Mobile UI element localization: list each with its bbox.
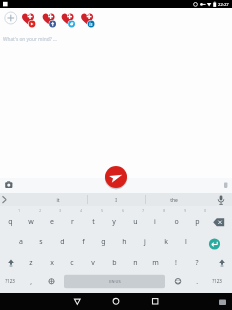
staticText: 0 [204,209,206,213]
staticText: a [19,237,23,247]
staticText: r [71,217,74,227]
staticText: the [170,197,178,204]
staticText: . [196,277,198,286]
button[interactable] [41,11,57,27]
button[interactable] [101,293,131,310]
staticText: i [154,217,156,227]
staticText: 9 [184,209,186,213]
staticText: h [122,237,127,247]
staticText: ! [175,258,177,268]
staticText: t [92,217,95,227]
button[interactable] [210,293,232,310]
staticText: s [39,237,43,247]
button[interactable] [87,193,145,206]
staticText: c [70,258,74,268]
staticText: it [56,197,60,204]
staticText: o [174,217,179,227]
staticText: z [29,258,33,268]
button[interactable] [60,11,76,27]
staticText: 3 [59,209,61,213]
staticText: l [185,237,187,247]
staticText: 2 [39,209,41,213]
staticText: v [91,258,95,268]
staticText: 22:27 [218,2,229,8]
staticText: , [30,277,32,286]
button[interactable] [0,178,18,193]
staticText: 8 [163,209,165,213]
staticText: q [8,217,13,227]
staticText: w [28,217,34,227]
staticText: n [133,258,138,268]
staticText: f [82,237,85,247]
staticText: k [164,237,168,247]
button[interactable] [140,293,170,310]
staticText: 4 [80,209,82,213]
button[interactable] [206,193,232,206]
staticText: p [195,217,200,227]
staticText: g [101,237,106,247]
staticText: 5 [101,209,103,213]
staticText: y [112,217,116,227]
staticText: 7 [142,209,144,213]
staticText: I [115,197,117,204]
button[interactable] [64,274,165,289]
staticText: u [133,217,138,227]
staticText: 6 [122,209,124,213]
staticText: d [60,237,65,247]
staticText: b [112,258,117,268]
staticText: m [152,258,159,268]
staticText: e [50,217,54,227]
staticText: What's on your mind? ... [3,36,57,43]
button[interactable] [145,193,203,206]
button[interactable] [12,193,87,206]
staticText: 1 [18,209,20,213]
button[interactable] [62,293,92,310]
button[interactable] [206,235,224,253]
button[interactable] [21,11,37,27]
staticText: ? [195,258,199,268]
staticText: ?123 [5,278,15,284]
staticText: EN·US [109,279,121,284]
button[interactable] [80,11,96,27]
staticText: ?123 [212,278,222,284]
staticText: x [50,258,54,268]
button[interactable] [4,11,18,25]
staticText: j [144,237,146,247]
